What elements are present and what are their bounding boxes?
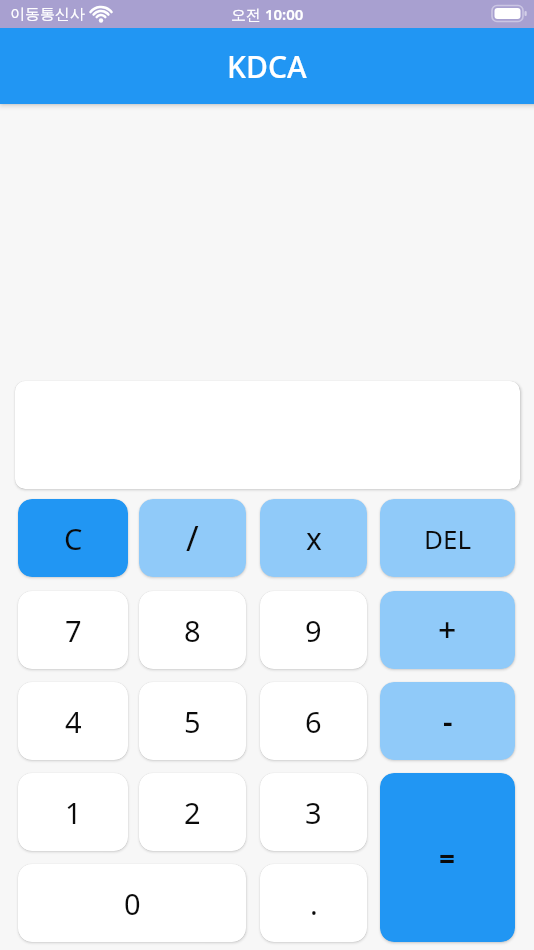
button[interactable]: 6	[260, 682, 367, 760]
staticText: 5	[184, 702, 201, 741]
button[interactable]: C	[18, 499, 128, 577]
button[interactable]: 3	[260, 773, 367, 851]
staticText: 9	[305, 611, 322, 650]
button[interactable]: 4	[18, 682, 128, 760]
staticText: 0	[124, 884, 141, 923]
staticText: 6	[305, 702, 322, 741]
staticText: 1	[65, 793, 82, 832]
button[interactable]: +	[380, 591, 515, 669]
button[interactable]: 5	[139, 682, 246, 760]
staticText: 오전 10:00	[231, 4, 304, 24]
staticText: +	[438, 608, 457, 652]
staticText: 이동통신사	[10, 5, 85, 24]
staticText: KDCA	[227, 46, 307, 87]
button[interactable]: 9	[260, 591, 367, 669]
button[interactable]: =	[380, 773, 515, 942]
button[interactable]: 8	[139, 591, 246, 669]
staticText: x	[306, 518, 322, 559]
staticText: C	[64, 519, 83, 558]
button[interactable]: -	[380, 682, 515, 760]
button[interactable]: DEL	[380, 499, 515, 577]
button[interactable]: 2	[139, 773, 246, 851]
staticText: 7	[65, 611, 82, 650]
staticText: /	[186, 515, 199, 561]
staticText: 4	[65, 702, 82, 741]
button[interactable]: /	[139, 499, 246, 577]
staticText: =	[439, 839, 456, 877]
staticText: 3	[305, 793, 322, 832]
button[interactable]: .	[260, 864, 367, 942]
button[interactable]: x	[260, 499, 367, 577]
button[interactable]: 0	[18, 864, 246, 942]
staticText: DEL	[424, 521, 472, 556]
staticText: 2	[184, 793, 201, 832]
staticText: -	[443, 701, 453, 742]
button[interactable]: 7	[18, 591, 128, 669]
button[interactable]: 1	[18, 773, 128, 851]
staticText: .	[310, 884, 318, 923]
staticText: 8	[184, 611, 201, 650]
